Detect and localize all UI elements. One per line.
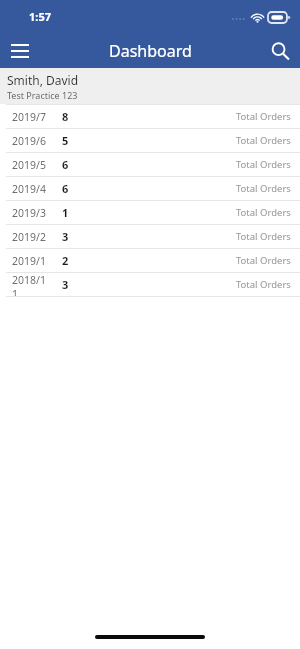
button[interactable]: Smith, David <box>0 68 300 104</box>
button[interactable]: 2019/3 <box>0 201 300 224</box>
staticText: 3 <box>62 277 69 292</box>
staticText: Total Orders <box>236 182 291 195</box>
staticText: 2019/6 <box>12 134 46 148</box>
button[interactable]: Open navigation menu <box>0 34 40 68</box>
staticText: Total Orders <box>236 254 291 267</box>
staticText: 2019/3 <box>12 206 46 220</box>
staticText: 6 <box>62 157 69 172</box>
staticText: Total Orders <box>236 134 291 147</box>
staticText: 2019/1 <box>12 254 46 268</box>
staticText: 3 <box>62 229 69 244</box>
button[interactable]: 2019/4 <box>0 177 300 200</box>
staticText: 2019/5 <box>12 158 46 172</box>
button[interactable]: 2019/7 <box>0 105 300 128</box>
staticText: 1:57 <box>29 9 51 24</box>
staticText: 1 <box>62 205 69 220</box>
staticText: 2 <box>62 253 69 268</box>
staticText: 6 <box>62 181 69 196</box>
staticText: Total Orders <box>236 278 291 291</box>
staticText: 2018/11 <box>12 273 50 296</box>
button[interactable]: Search <box>260 34 300 68</box>
button[interactable]: 2019/5 <box>0 153 300 176</box>
button[interactable]: 2019/1 <box>0 249 300 272</box>
staticText: Total Orders <box>236 230 291 243</box>
staticText: 8 <box>62 109 69 124</box>
staticText: Smith, David <box>7 72 79 88</box>
staticText: Total Orders <box>236 110 291 123</box>
staticText: Test Practice 123 <box>7 89 78 101</box>
staticText: 5 <box>62 133 69 148</box>
staticText: 2019/2 <box>12 230 46 244</box>
staticText: Dashboard <box>109 40 192 62</box>
staticText: 2019/4 <box>12 182 46 196</box>
staticText: Total Orders <box>236 158 291 171</box>
button[interactable]: 2018/11 <box>0 273 300 296</box>
staticText: 2019/7 <box>12 110 46 124</box>
button[interactable]: 2019/6 <box>0 129 300 152</box>
button[interactable]: 2019/2 <box>0 225 300 248</box>
staticText: Total Orders <box>236 206 291 219</box>
